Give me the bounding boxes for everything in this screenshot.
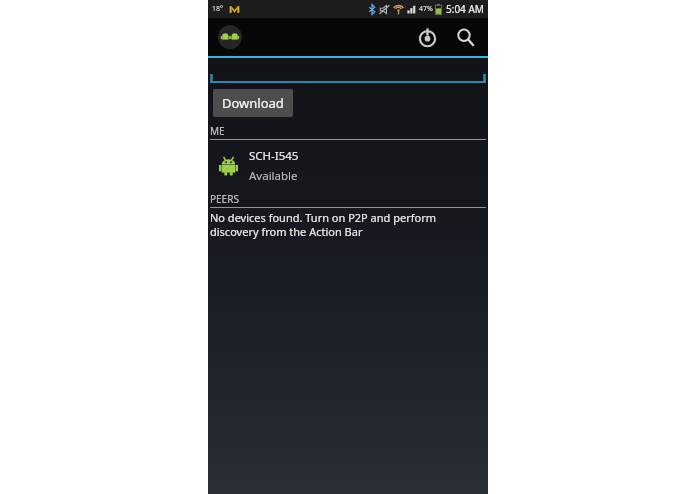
staticText: 47% [419, 4, 433, 14]
button[interactable]: SCH-I545 [208, 140, 488, 192]
staticText: SCH-I545 [249, 148, 299, 164]
staticText: No devices found. Turn on P2P and perfor… [210, 210, 472, 239]
staticText: 18° [212, 4, 224, 14]
staticText: 5:04 AM [446, 2, 484, 16]
button[interactable]: Navigate up [216, 23, 244, 51]
staticText: PEERS [210, 192, 239, 206]
staticText: Available [249, 168, 298, 184]
staticText: Download [222, 94, 284, 112]
staticText: ME [210, 124, 225, 138]
button[interactable]: Search [445, 18, 485, 56]
button[interactable]: Discover peers [409, 19, 445, 55]
button[interactable]: Download [213, 89, 293, 117]
